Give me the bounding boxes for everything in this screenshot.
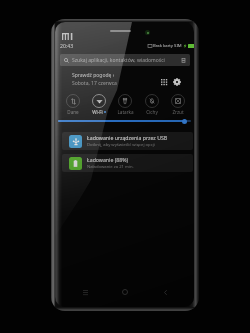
button[interactable]: Latarka: [113, 94, 137, 115]
button[interactable]: Szukaj aplikacji, kontaktów, wiadomości: [60, 54, 190, 66]
staticText: Sobota, 17 czerwca: [72, 80, 117, 87]
button[interactable]: Ładowanie urządzenia przez USB: [62, 132, 193, 150]
staticText: 20:43: [60, 42, 74, 49]
button[interactable]: Zrzut: [166, 94, 190, 115]
staticText: Naładowanie za 21 min.: [87, 164, 134, 170]
button[interactable]: Expand toggles: [158, 76, 169, 87]
button[interactable]: Settings: [171, 76, 182, 87]
staticText: Szukaj aplikacji, kontaktów, wiadomości: [72, 57, 165, 64]
button[interactable]: Ładowanie (88%): [62, 154, 193, 172]
staticText: Dotknij, aby wyświetlić więcej opcji: [87, 142, 155, 148]
staticText: Ładowanie (88%): [87, 156, 129, 163]
staticText: Sprawdź pogodę ›: [72, 72, 115, 79]
button[interactable]: Recent apps: [78, 285, 92, 299]
staticText: Latarka: [117, 109, 134, 115]
staticText: Cichy: [146, 109, 158, 115]
other: Scan code: [181, 58, 186, 63]
staticText: Wi-Fi: [92, 109, 103, 115]
staticText: Dane: [67, 109, 79, 115]
button[interactable]: Wi-Fi: [87, 94, 111, 115]
button[interactable]: Cichy: [140, 94, 164, 115]
button[interactable]: Home: [118, 285, 132, 299]
staticText: Brak karty SIM: [153, 43, 182, 49]
staticText: Zrzut: [172, 109, 184, 115]
button[interactable]: Sprawdź pogodę ›: [72, 72, 117, 87]
button[interactable]: Dane: [61, 94, 85, 115]
button[interactable]: Back: [158, 285, 172, 299]
staticText: Ładowanie urządzenia przez USB: [87, 134, 168, 141]
